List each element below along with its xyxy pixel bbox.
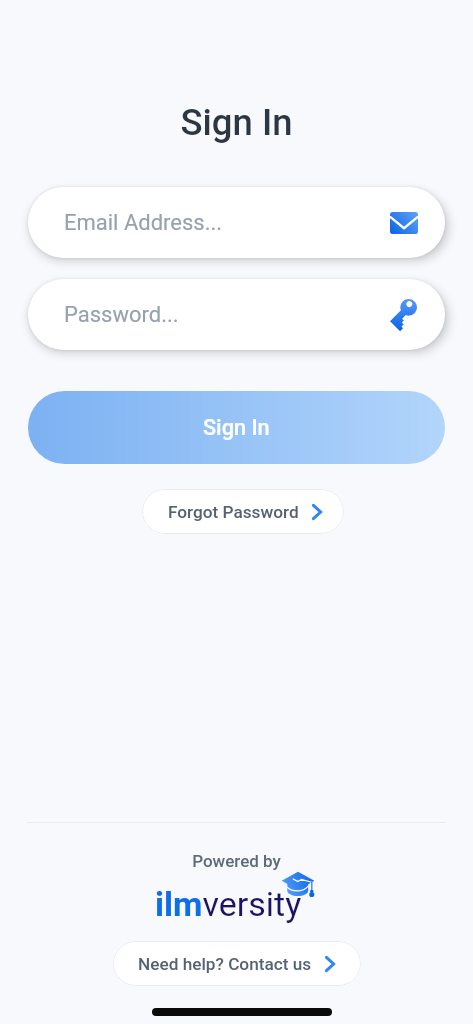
other: Email	[390, 212, 418, 234]
staticText: Email Address...	[64, 210, 223, 236]
staticText: Need help? Contact us	[138, 954, 312, 974]
staticText: Password...	[64, 302, 179, 328]
staticText: Powered by	[0, 851, 473, 871]
button[interactable]: Email Address...	[28, 187, 445, 258]
button[interactable]: Forgot Password	[142, 489, 344, 534]
button[interactable]: Need help? Contact us	[113, 941, 361, 986]
staticText: Forgot Password	[168, 502, 299, 522]
staticText: Sign In	[0, 101, 473, 144]
staticText: Sign In	[203, 415, 270, 440]
button[interactable]: Sign In	[28, 391, 445, 464]
staticText: ilmversity	[155, 884, 302, 924]
button[interactable]: Password...	[28, 279, 445, 350]
other: Password	[387, 296, 420, 329]
